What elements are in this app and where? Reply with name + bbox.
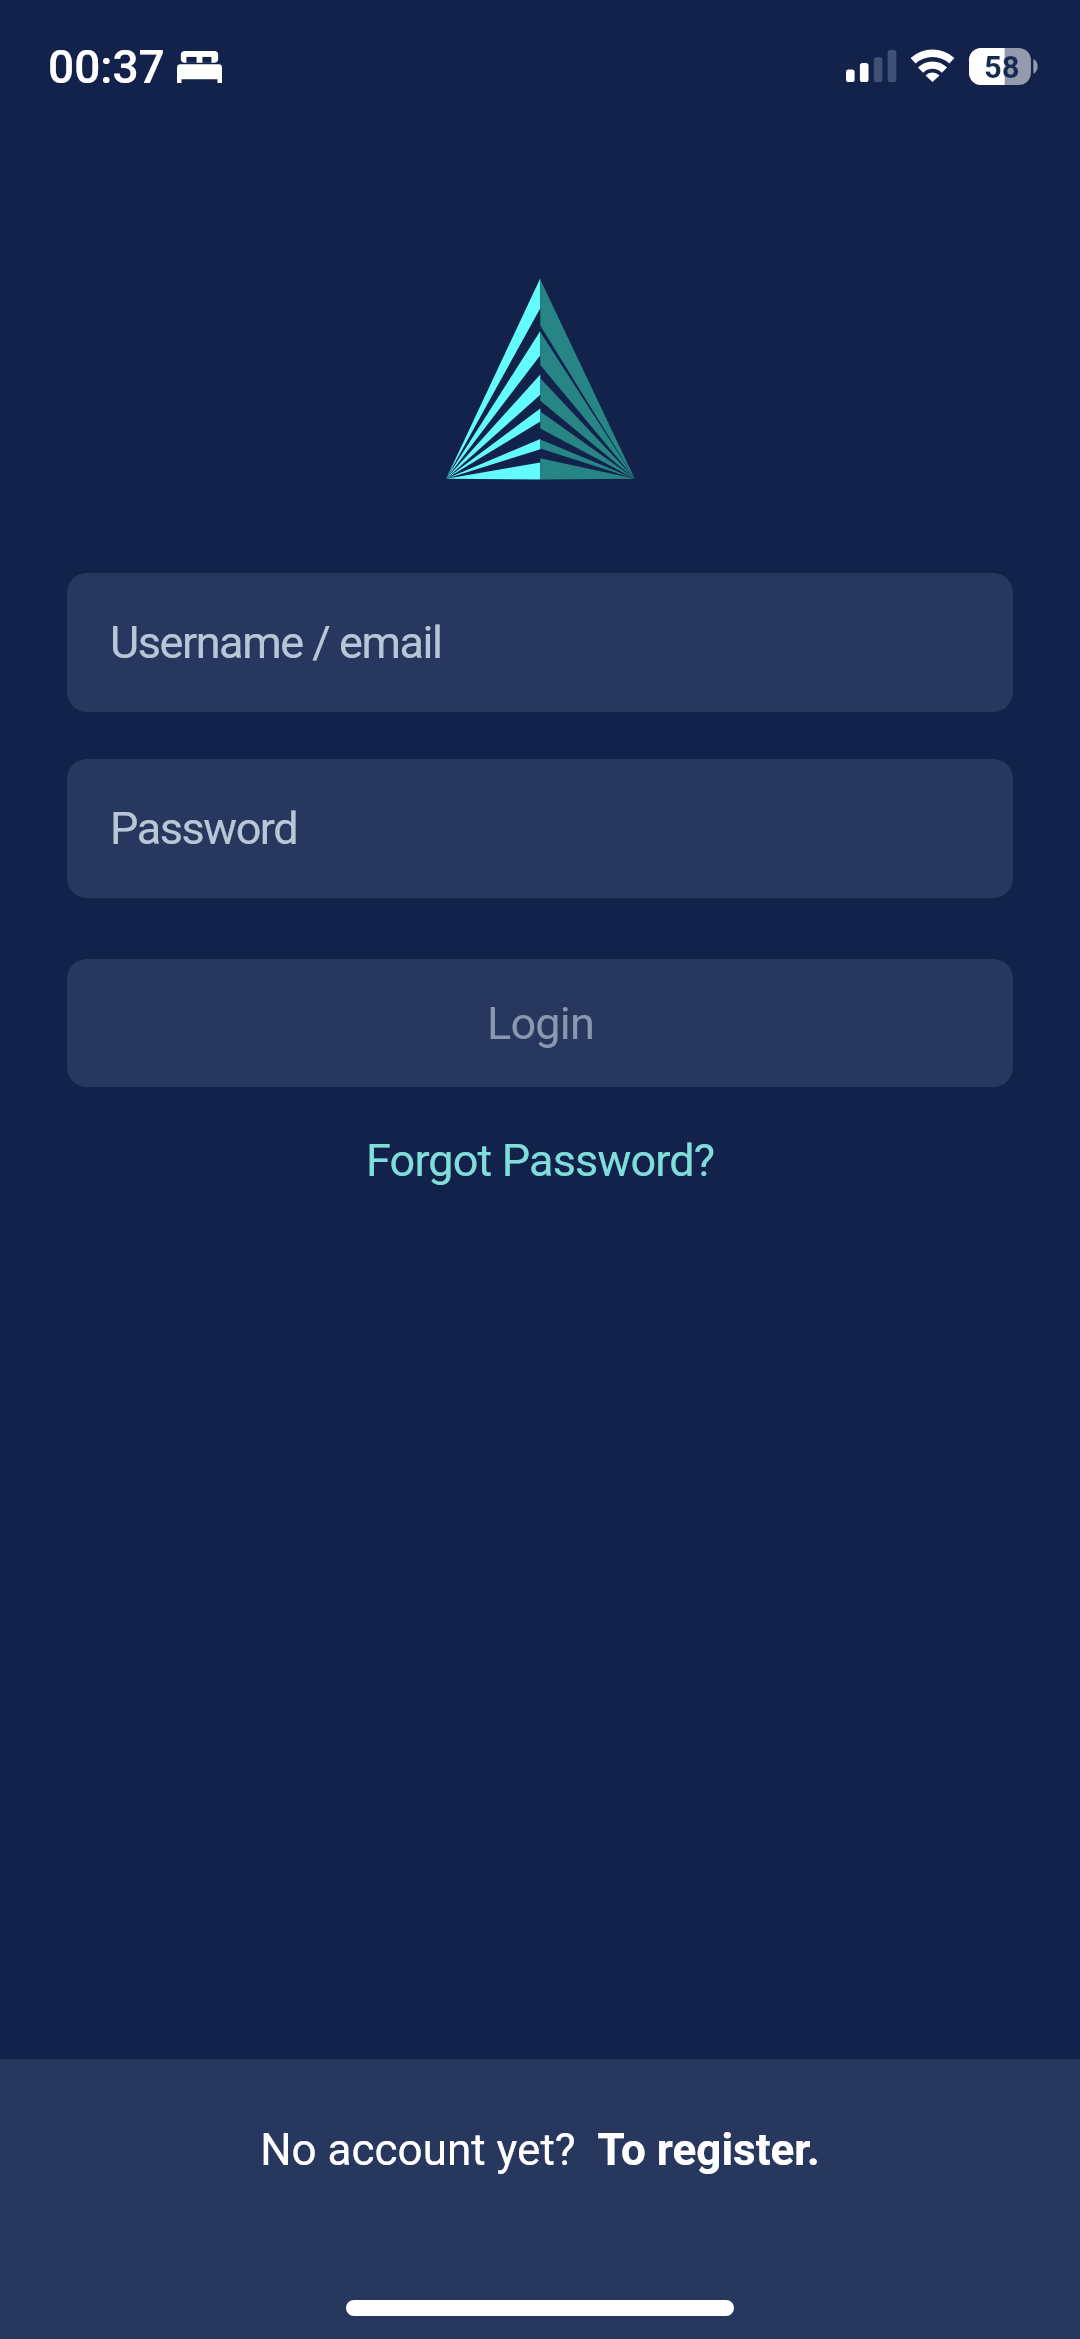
button[interactable]: Login (67, 959, 1013, 1087)
other: Sleep mode (177, 51, 222, 83)
button[interactable]: Forgot Password? (342, 1124, 739, 1197)
staticText: No account yet? To register. (260, 2124, 820, 2176)
other: Cellular signal (846, 50, 896, 82)
staticText: Password (110, 802, 298, 855)
staticText: Login (487, 997, 594, 1050)
button[interactable]: Password (67, 759, 1013, 898)
staticText: 58 (984, 49, 1020, 85)
other: Wi-Fi (910, 49, 955, 82)
staticText: Forgot Password? (366, 1134, 715, 1187)
staticText: 00:37 (48, 40, 165, 94)
button[interactable]: No account yet? To register. (244, 2116, 836, 2184)
other: Battery 58 percent (969, 48, 1039, 85)
button[interactable]: Username / email (67, 573, 1013, 712)
staticText: Username / email (110, 616, 442, 669)
